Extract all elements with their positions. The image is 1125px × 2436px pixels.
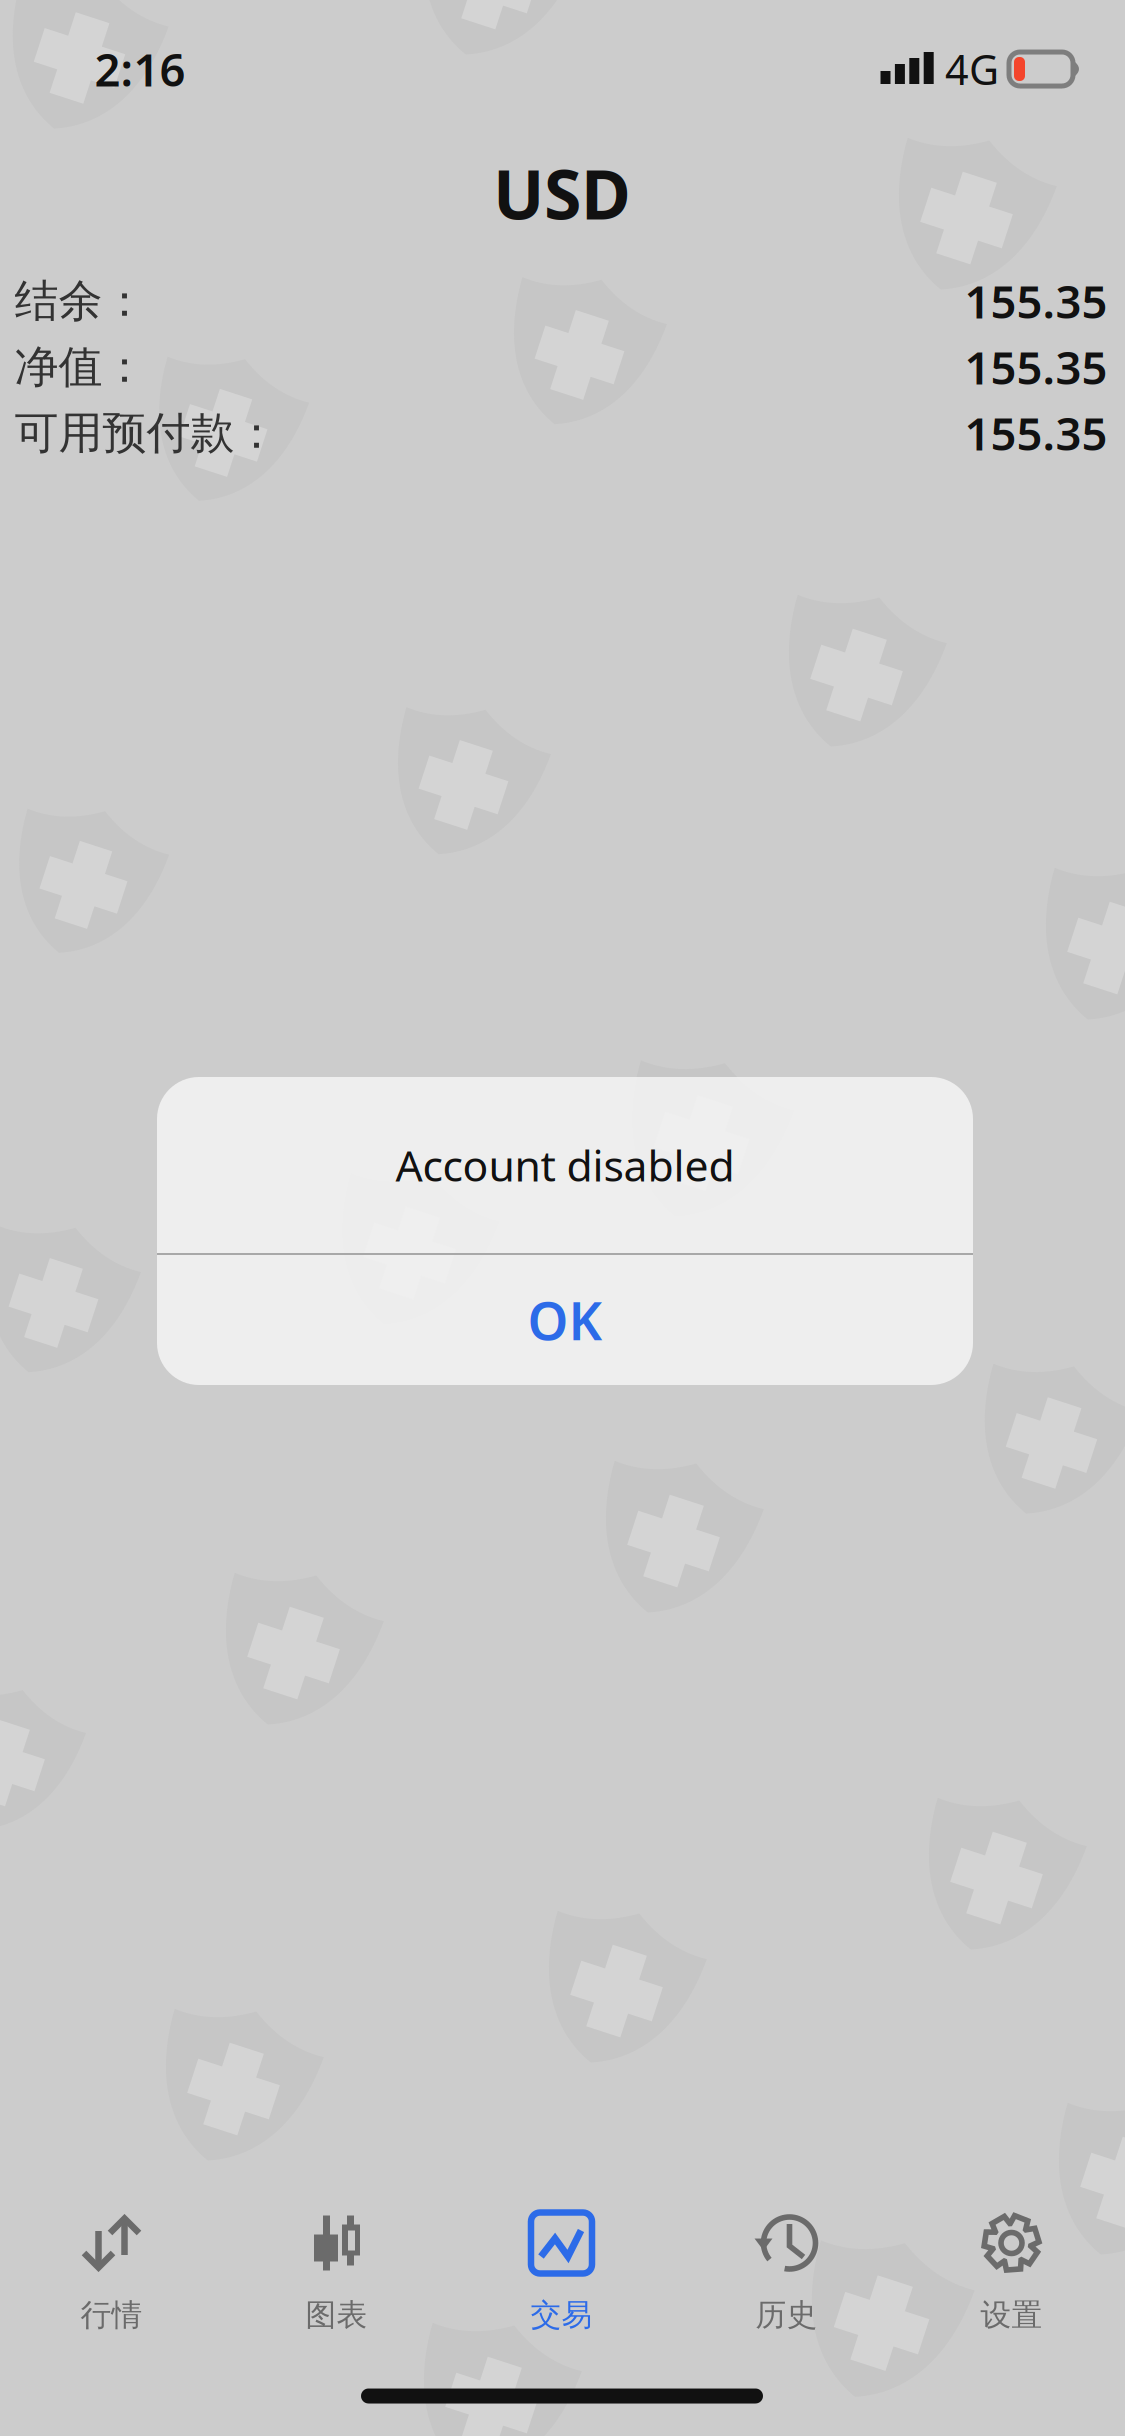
staticText: 历史 <box>755 2296 817 2334</box>
button[interactable]: 历史 <box>674 2199 899 2345</box>
staticText: 155.35 <box>964 403 1107 463</box>
staticText: Account disabled <box>395 1137 734 1193</box>
button[interactable]: 图表 <box>224 2199 449 2345</box>
staticText: 行情 <box>80 2296 142 2334</box>
staticText: 图表 <box>305 2296 367 2334</box>
button[interactable]: OK <box>157 1255 973 1385</box>
staticText: 2:16 <box>94 39 185 99</box>
staticText: 净值： <box>14 340 146 394</box>
staticText: OK <box>527 1285 602 1355</box>
staticText: 结余： <box>14 274 146 328</box>
button[interactable]: 设置 <box>899 2199 1124 2345</box>
staticText: USD <box>493 148 631 238</box>
staticText: 155.35 <box>964 271 1107 331</box>
button[interactable]: 交易 <box>449 2199 674 2345</box>
staticText: 可用预付款： <box>14 406 278 460</box>
staticText: 交易 <box>530 2296 592 2334</box>
staticText: 设置 <box>980 2296 1042 2334</box>
staticText: 155.35 <box>964 337 1107 397</box>
button[interactable]: 行情 <box>0 2199 224 2345</box>
staticText: 4G <box>945 42 999 96</box>
